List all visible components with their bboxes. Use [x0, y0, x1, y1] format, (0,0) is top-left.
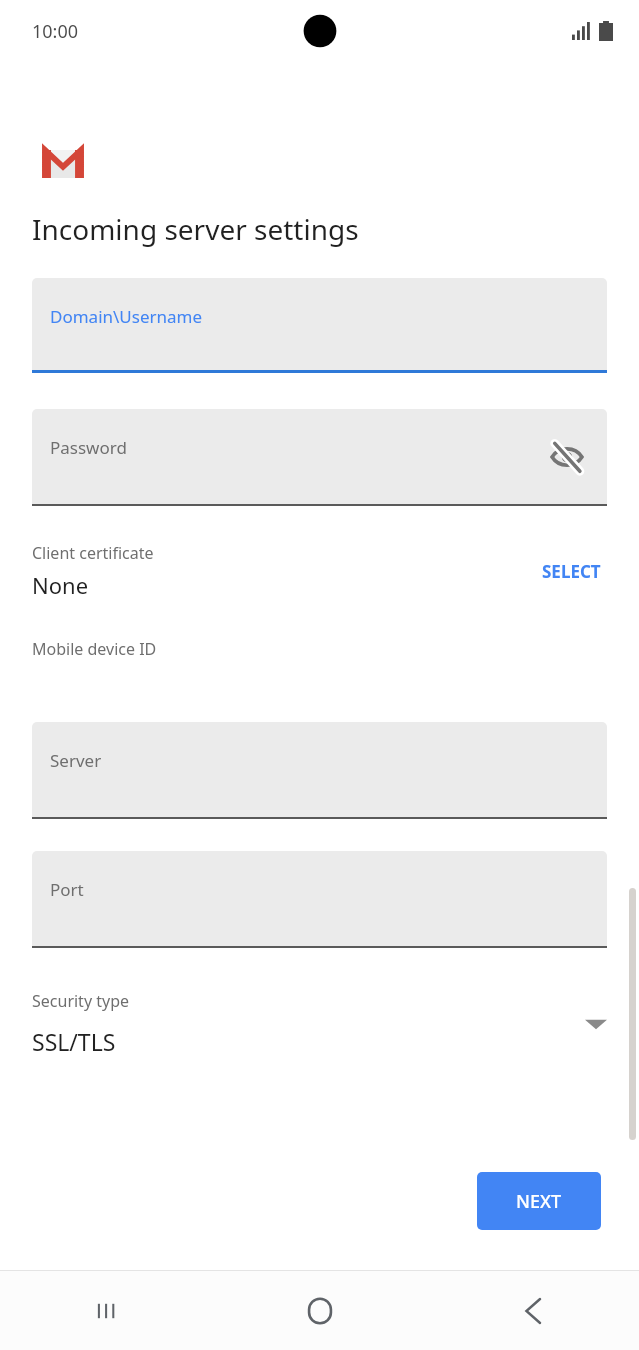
staticText: 10:00: [32, 19, 79, 44]
staticText: Client certificate: [32, 542, 154, 564]
other: Open security type dropdown: [585, 1017, 607, 1031]
button[interactable]: Home: [213, 1271, 426, 1350]
button[interactable]: Recent apps: [0, 1271, 213, 1350]
staticText: Mobile device ID: [32, 638, 157, 660]
button[interactable]: Server: [32, 722, 607, 819]
button[interactable]: Client certificate: [0, 538, 639, 604]
staticText: NEXT: [516, 1189, 562, 1214]
staticText: SELECT: [542, 560, 601, 583]
staticText: Server: [50, 749, 102, 772]
staticText: Security type: [32, 990, 130, 1012]
staticText: SSL/TLS: [32, 1026, 116, 1057]
button[interactable]: NEXT: [477, 1172, 601, 1230]
button[interactable]: SELECT: [536, 552, 607, 591]
button[interactable]: Show password: [545, 435, 589, 479]
button[interactable]: Port: [32, 851, 607, 948]
staticText: Domain\Username: [50, 305, 203, 328]
button[interactable]: Back: [426, 1271, 639, 1350]
button[interactable]: Security type: [0, 990, 639, 1057]
staticText: Incoming server settings: [32, 210, 359, 248]
staticText: None: [32, 570, 89, 600]
button[interactable]: Domain\Username: [32, 278, 607, 373]
staticText: Port: [50, 878, 84, 901]
staticText: Password: [50, 436, 127, 459]
button[interactable]: Password: [32, 409, 607, 506]
